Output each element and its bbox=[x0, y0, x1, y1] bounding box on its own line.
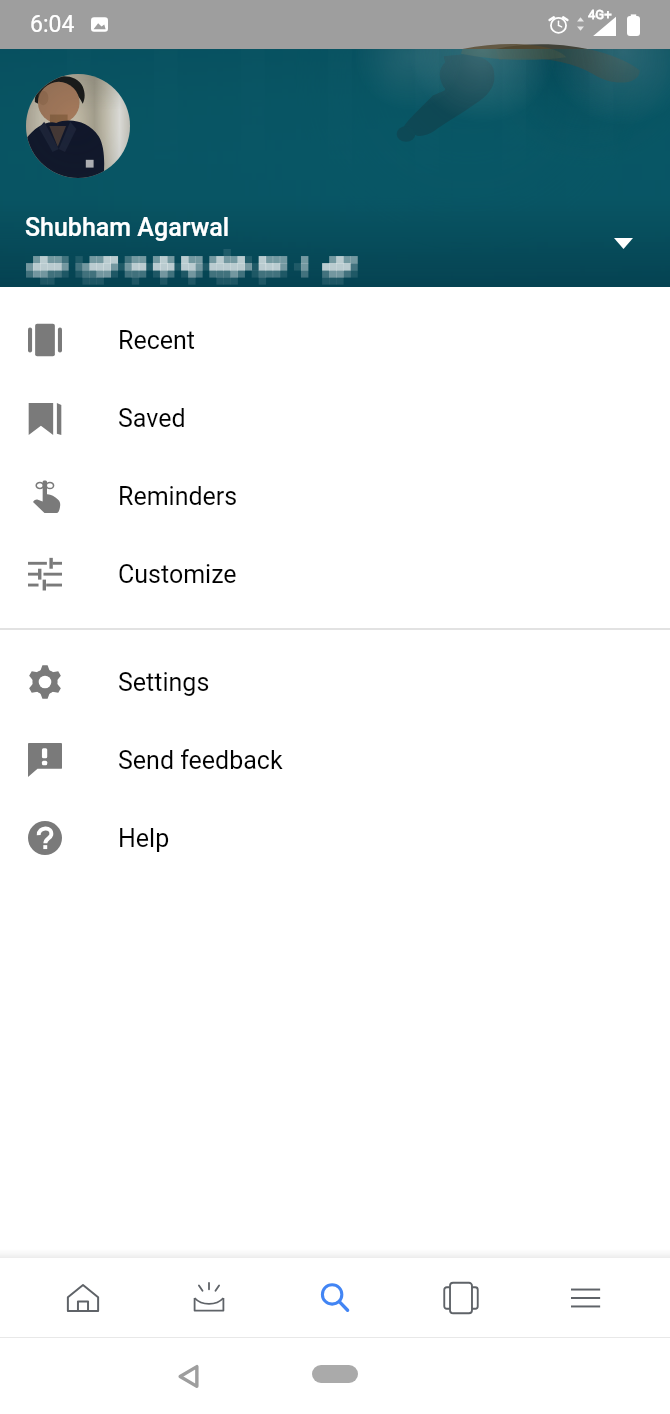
button[interactable]: Send feedback bbox=[0, 721, 670, 799]
button[interactable]: Recent bbox=[0, 301, 670, 379]
button[interactable]: Discover bbox=[146, 1258, 272, 1337]
button[interactable]: Collections bbox=[398, 1258, 524, 1337]
button[interactable]: Search bbox=[272, 1258, 398, 1337]
button[interactable]: Home bbox=[20, 1258, 146, 1337]
button[interactable]: Settings bbox=[0, 643, 670, 721]
staticText: Recent bbox=[118, 326, 195, 355]
button[interactable]: Reminders bbox=[0, 457, 670, 535]
staticText: 6:04 bbox=[30, 11, 75, 38]
staticText: Send feedback bbox=[118, 746, 283, 775]
button[interactable]: Account photo bbox=[26, 74, 130, 178]
staticText: Reminders bbox=[118, 482, 238, 511]
staticText: Settings bbox=[118, 668, 210, 697]
button[interactable]: Expand account list bbox=[592, 212, 654, 274]
staticText: Shubham Agarwal bbox=[25, 213, 230, 242]
button[interactable]: Help bbox=[0, 799, 670, 877]
staticText: Help bbox=[118, 824, 170, 853]
button[interactable]: Home bbox=[312, 1365, 358, 1383]
staticText: 4G+ bbox=[588, 7, 612, 22]
button[interactable]: Back bbox=[164, 1352, 212, 1400]
button[interactable]: More bbox=[524, 1258, 650, 1337]
staticText: Customize bbox=[118, 560, 237, 589]
button[interactable]: Saved bbox=[0, 379, 670, 457]
staticText: Saved bbox=[118, 404, 186, 433]
button[interactable]: Customize bbox=[0, 535, 670, 613]
